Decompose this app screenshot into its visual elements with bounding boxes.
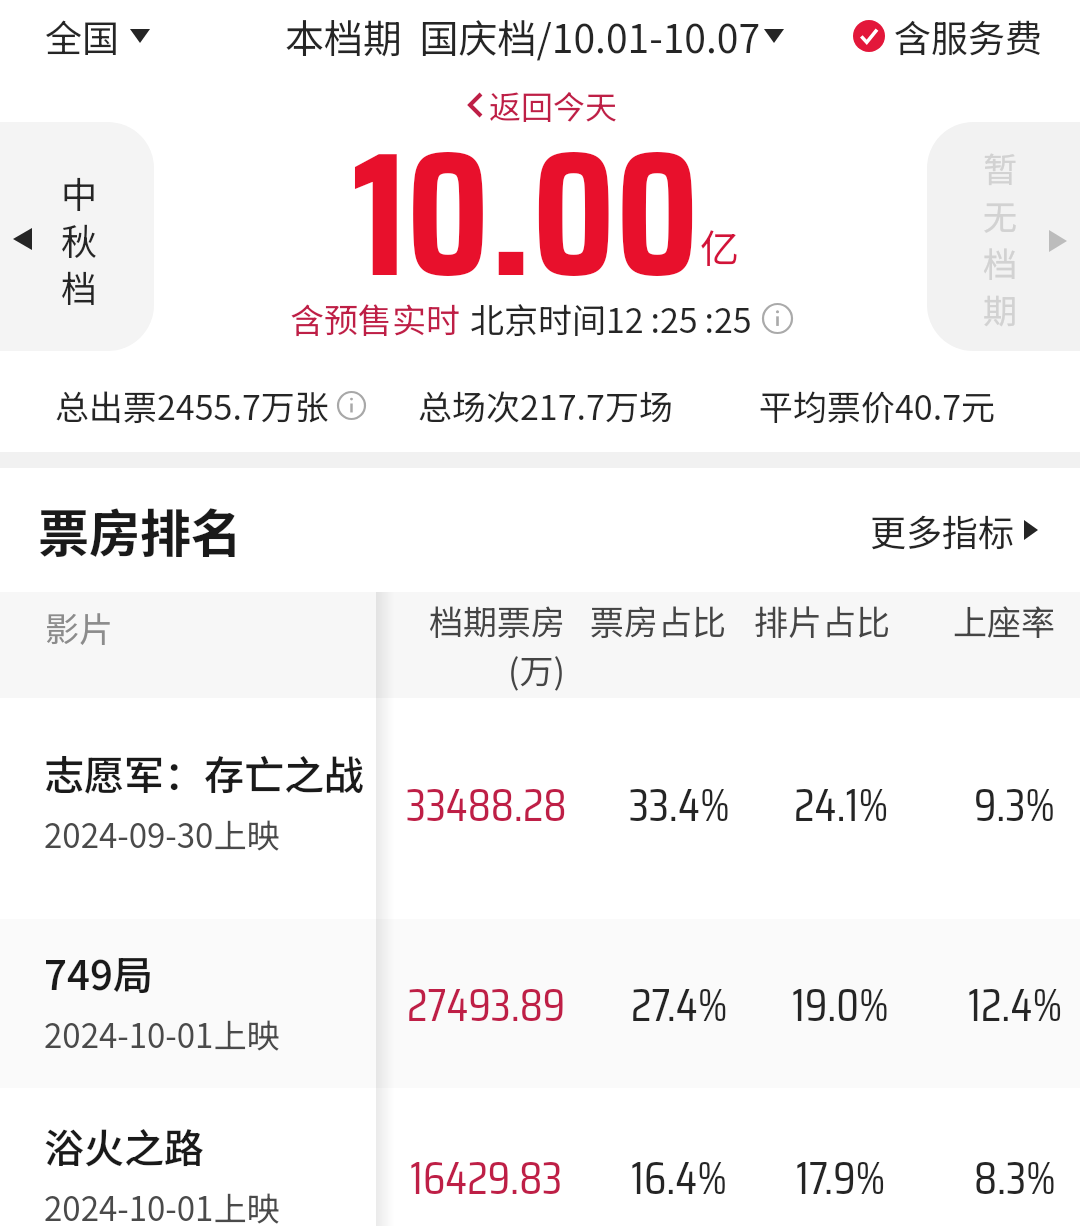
staticText: 19.0% <box>792 968 890 1042</box>
button[interactable]: 全国 <box>45 9 150 63</box>
staticText: 更多指标 <box>870 504 1015 556</box>
staticText: 亿 <box>700 218 740 274</box>
button[interactable]: 返回今天 <box>468 82 618 128</box>
staticText: 16.4% <box>631 1141 728 1215</box>
button[interactable]: 总出票2455.7万张 <box>55 381 366 430</box>
button[interactable]: 中 秋 档 <box>0 122 154 351</box>
other: 含服务费 <box>853 20 885 52</box>
staticText: 上座率 <box>953 596 1055 645</box>
staticText: 9.3% <box>974 768 1056 842</box>
staticText: 返回今天 <box>489 82 618 128</box>
other: 上一档期 <box>13 228 32 250</box>
staticText: 总场次217.7万场 <box>418 381 673 430</box>
staticText: 票房占比 <box>590 596 726 645</box>
staticText: 志愿军：存亡之战 <box>44 744 364 802</box>
staticText: 总出票2455.7万张 <box>55 381 329 430</box>
staticText: 本档期 国庆档/10.01-10.07 <box>285 8 761 64</box>
button[interactable]: 志愿军：存亡之战 <box>0 698 1080 919</box>
staticText: 27.4% <box>631 968 728 1042</box>
staticText: 2024-10-01上映 <box>44 1183 280 1226</box>
staticText: 27493.89 <box>407 968 566 1042</box>
button[interactable]: 更多指标 <box>870 504 1038 556</box>
staticText: 24.1% <box>794 768 889 842</box>
button[interactable]: 本档期 国庆档/10.01-10.07 <box>285 8 784 64</box>
button[interactable]: 浴火之路 <box>0 1088 1080 1226</box>
staticText: 749局 <box>44 944 153 1002</box>
button[interactable]: 暂 无 档 期 <box>927 122 1080 351</box>
staticText: 含服务费 <box>894 9 1042 63</box>
staticText: 全国 <box>45 9 119 63</box>
staticText: 暂 无 档 期 <box>983 143 1017 333</box>
staticText: 影片 <box>45 603 113 652</box>
staticText: 2024-10-01上映 <box>44 1010 280 1058</box>
staticText: 档期票房 <box>429 596 565 645</box>
staticText: 12.4% <box>968 968 1063 1042</box>
staticText: 8.3% <box>974 1141 1056 1215</box>
staticText: 排片占比 <box>754 596 890 645</box>
staticText: 含预售实时 <box>290 294 460 343</box>
staticText: 16429.83 <box>410 1141 563 1215</box>
staticText: 10.00 <box>352 76 700 351</box>
staticText: 浴火之路 <box>44 1117 204 1175</box>
staticText: 2024-09-30上映 <box>44 810 280 858</box>
staticText: 中 秋 档 <box>61 166 98 312</box>
staticText: 票房排名 <box>38 493 243 567</box>
staticText: 平均票价40.7元 <box>759 381 996 430</box>
other: 下一档期 <box>1049 230 1067 252</box>
staticText: 33.4% <box>629 768 730 842</box>
button[interactable]: 749局 <box>0 919 1080 1088</box>
staticText: (万) <box>508 645 565 694</box>
staticText: 33488.28 <box>406 768 567 842</box>
staticText: 北京时间12 :25 :25 <box>470 294 752 343</box>
staticText: 17.9% <box>796 1141 886 1215</box>
button[interactable]: 含服务费 <box>853 9 1042 63</box>
